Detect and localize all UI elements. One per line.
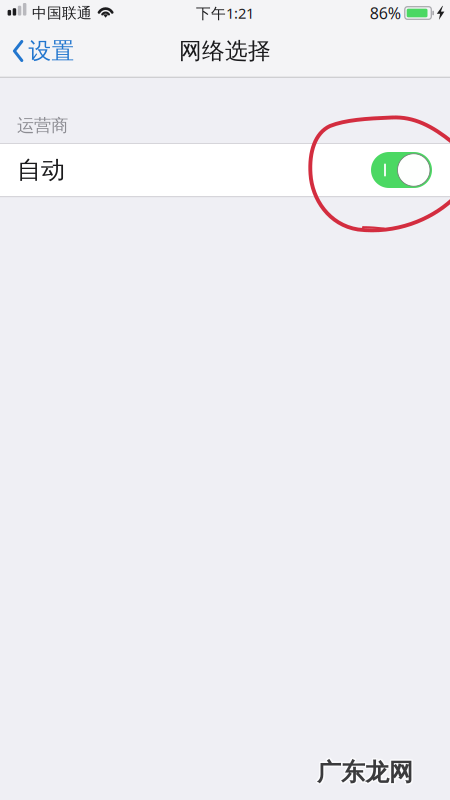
staticText: 广东龙网: [318, 756, 414, 786]
staticText: 广东龙网: [319, 757, 415, 787]
staticText: 广东龙网: [317, 756, 413, 785]
staticText: 广东龙网: [316, 756, 412, 786]
staticText: 自动: [17, 155, 65, 185]
staticText: 广东龙网: [318, 759, 414, 788]
staticText: 广东龙网: [315, 757, 411, 787]
button[interactable]: 设置: [0, 26, 84, 76]
staticText: 下午1:21: [196, 3, 254, 23]
staticText: 广东龙网: [317, 757, 413, 787]
staticText: 广东龙网: [317, 759, 413, 789]
staticText: 运营商: [17, 115, 68, 136]
staticText: 网络选择: [179, 37, 271, 65]
staticText: 设置: [28, 37, 74, 65]
button[interactable]: 自动: [0, 144, 450, 196]
staticText: 中国联通: [32, 4, 92, 22]
staticText: 广东龙网: [316, 759, 412, 788]
staticText: 86%: [370, 2, 401, 24]
